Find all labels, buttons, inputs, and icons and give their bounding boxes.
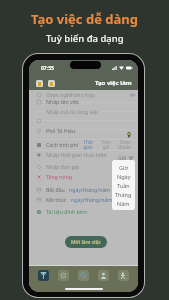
button[interactable]: Tăng nóng: [29, 172, 138, 181]
staticText: Kết thúc: [46, 196, 67, 203]
staticText: Tháng: [115, 191, 132, 198]
button[interactable]: Nhập đơn giá: [29, 162, 138, 171]
staticText: Năm: [117, 200, 130, 207]
button[interactable]: Phố Tô Hiệu: [29, 126, 138, 135]
button[interactable]: Search: [78, 270, 89, 281]
staticText: Tuần: [117, 182, 130, 189]
button[interactable]: Tài liệu đính kèm: [29, 207, 138, 216]
button[interactable]: Thời gian: [80, 139, 95, 151]
staticText: Tăng nóng: [46, 173, 72, 180]
button[interactable]: Theo thoản: [117, 139, 132, 151]
button[interactable]: Profile: [98, 270, 109, 281]
staticText: Theo thoản: [118, 139, 131, 151]
staticText: Phố Tô Hiệu: [46, 127, 76, 134]
button[interactable]: Chọn nghề phù hợp: [29, 90, 138, 99]
button[interactable]: Mời làm việc: [65, 236, 107, 248]
button[interactable]: Năm: [112, 199, 135, 208]
staticText: ngày/tháng/năm: [71, 196, 113, 203]
button[interactable]: Nhập tên việc: [29, 97, 138, 106]
button[interactable]: Bắt đầu: [29, 185, 138, 194]
button[interactable]: Nhập mô tả công việc: [29, 107, 138, 116]
staticText: Nhập thời gian thực hiện: [46, 151, 107, 158]
staticText: 07:55: [41, 65, 54, 72]
staticText: Trọn gói: [101, 139, 111, 151]
button[interactable]: Tháng: [112, 190, 135, 199]
staticText: Chọn nghề phù hợp: [46, 91, 95, 98]
staticText: Tài liệu đính kèm: [46, 208, 88, 215]
staticText: Tạo việc làm: [95, 79, 132, 87]
staticText: Mời làm việc: [71, 239, 101, 246]
button[interactable]: Nhập thời gian thực hiện: [29, 150, 138, 159]
button[interactable]: Ngày: [112, 172, 135, 181]
button[interactable]: App shortcut: [36, 80, 43, 87]
staticText: Giờ: [119, 164, 128, 171]
staticText: Nhập tên việc: [46, 98, 80, 105]
button[interactable]: Trọn gói: [98, 139, 113, 151]
button[interactable]: Account: [118, 270, 129, 281]
button[interactable]: Cách tính phí: [29, 140, 138, 149]
staticText: Giờ: [118, 155, 127, 162]
button[interactable]: Kết thúc: [29, 195, 138, 204]
staticText: Thời gian: [83, 139, 93, 151]
button[interactable]: Messages: [58, 270, 69, 281]
button[interactable]: Giờ: [118, 155, 133, 162]
button[interactable]: Giờ: [112, 163, 135, 172]
staticText: Bắt đầu: [46, 186, 65, 193]
staticText: ngày/tháng/năm: [69, 186, 111, 193]
button[interactable]: Upload: [38, 270, 49, 281]
button[interactable]: Tuần: [112, 181, 135, 190]
staticText: Tuỳ biến đa dạng: [46, 32, 124, 45]
staticText: Nhập mô tả công việc: [46, 108, 99, 115]
staticText: Ngày: [117, 173, 131, 180]
other: Options: [130, 93, 135, 97]
staticText: Nhập đơn giá: [46, 163, 79, 170]
staticText: Cách tính phí: [46, 141, 78, 148]
staticText: Tạo việc dễ dàng: [31, 10, 138, 28]
button[interactable]: App shortcut: [48, 80, 55, 87]
